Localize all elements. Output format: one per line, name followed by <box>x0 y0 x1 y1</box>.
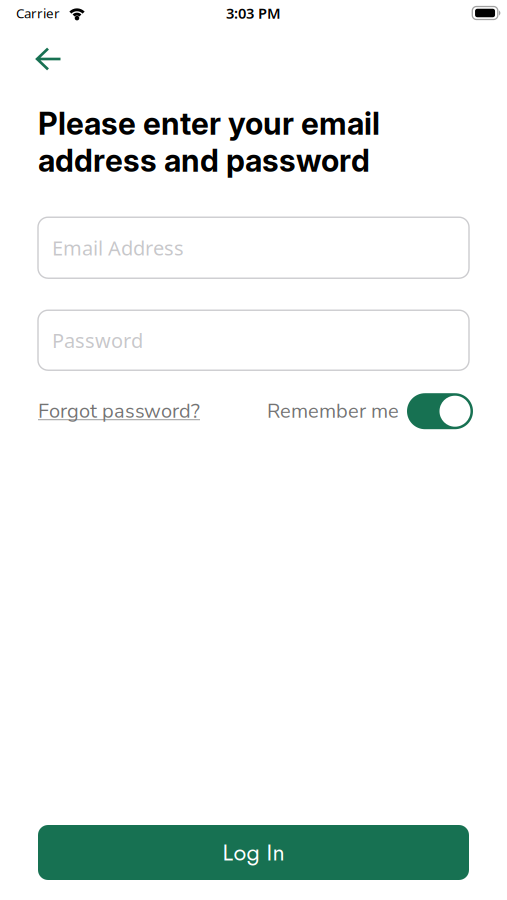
button[interactable]: Email Address <box>38 217 469 278</box>
staticText: Remember me <box>267 398 399 425</box>
staticText: Please enter your email address and pass… <box>38 105 380 179</box>
staticText: Carrier <box>16 4 60 22</box>
staticText: Email Address <box>52 234 184 261</box>
button[interactable]: Log In <box>38 825 469 880</box>
staticText: Forgot password? <box>38 398 200 425</box>
button[interactable]: Back <box>36 48 61 70</box>
staticText: Password <box>52 327 143 353</box>
staticText: Log In <box>222 836 284 869</box>
button[interactable]: Forgot password? <box>38 398 200 425</box>
button[interactable]: Remember me <box>407 393 473 429</box>
button[interactable]: Password <box>38 310 469 370</box>
staticText: 3:03 PM <box>226 3 281 23</box>
